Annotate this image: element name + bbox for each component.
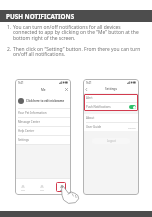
staticText: Click here to edit nickname <box>26 99 65 103</box>
button[interactable]: Me <box>57 183 66 192</box>
staticText: User Guide <box>86 125 128 129</box>
staticText: Help Center <box>18 129 35 133</box>
button[interactable]: PUSH NOTIFICATIONS <box>0 10 152 22</box>
staticText: 9:41 <box>86 81 92 85</box>
button[interactable]: Push notifications toggle <box>129 105 136 109</box>
button[interactable]: Help Center <box>18 127 68 135</box>
button[interactable]: Message Center <box>18 118 68 126</box>
button[interactable]: Close <box>64 87 69 92</box>
staticText: You can turn on/off notifications for al… <box>13 24 139 42</box>
staticText: 9:41 <box>18 81 24 85</box>
button[interactable]: Settings <box>18 136 68 144</box>
staticText: Message Center <box>18 120 40 124</box>
staticText: 1. <box>7 24 12 31</box>
staticText: PUSH NOTIFICATIONS <box>6 12 75 21</box>
staticText: Then click on “Setting” button. From the… <box>13 46 141 58</box>
button[interactable]: About <box>86 114 136 122</box>
staticText: Settings <box>18 138 29 142</box>
staticText: Me <box>41 88 46 92</box>
button[interactable]: Home <box>18 183 27 192</box>
button[interactable]: Devices <box>37 183 46 192</box>
button[interactable]: Logout <box>92 138 130 144</box>
button[interactable]: Alert <box>86 94 136 102</box>
staticText: Settings <box>105 87 118 91</box>
staticText: Logout <box>107 139 116 143</box>
staticText: Alert <box>86 96 136 100</box>
staticText: About <box>86 116 95 120</box>
staticText: Push Notifications <box>86 105 129 109</box>
button[interactable]: Back <box>84 87 89 92</box>
button[interactable]: User Guide <box>86 123 136 131</box>
staticText: Your Pet Information <box>18 111 47 115</box>
button[interactable]: Click here to edit nickname <box>18 94 68 108</box>
button[interactable]: Your Pet Information <box>18 109 68 117</box>
staticText: 2. <box>7 46 12 53</box>
staticText: Details <box>128 126 136 129</box>
